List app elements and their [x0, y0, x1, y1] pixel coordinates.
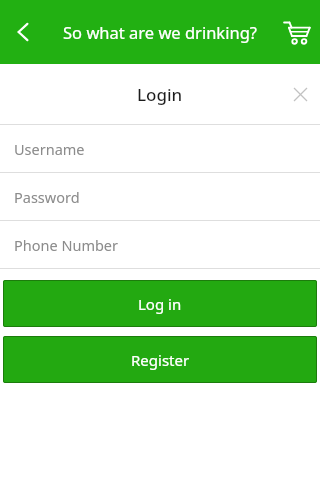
button[interactable]: Back	[0, 9, 46, 55]
staticText: So what are we drinking?	[63, 21, 257, 43]
staticText: Register	[131, 350, 190, 370]
staticText: Log in	[138, 294, 182, 314]
button[interactable]: Password	[0, 173, 320, 220]
button[interactable]: Register	[3, 336, 317, 383]
button[interactable]: Username	[0, 125, 320, 172]
staticText: Login	[137, 83, 183, 106]
staticText: Phone Number	[14, 235, 119, 255]
button[interactable]: Phone Number	[0, 221, 320, 268]
button[interactable]: Close	[280, 74, 320, 114]
staticText: Username	[14, 139, 85, 159]
button[interactable]: Shopping cart	[272, 8, 320, 56]
button[interactable]: Log in	[3, 280, 317, 327]
staticText: Password	[14, 187, 80, 207]
